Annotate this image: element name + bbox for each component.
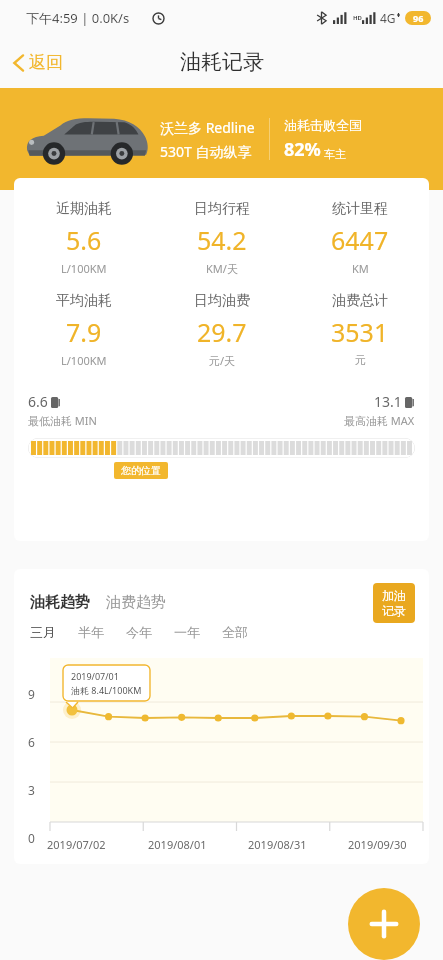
staticText: 加油 <box>382 588 406 603</box>
staticText: 6.6 <box>28 392 48 411</box>
button[interactable]: 半年 <box>78 624 126 640</box>
staticText: L/100KM <box>61 353 107 368</box>
staticText: 油耗 8.4L/100KM <box>71 684 142 696</box>
staticText: 返回 <box>29 52 63 73</box>
staticText: 7.9 <box>66 315 102 349</box>
staticText: 三月 <box>30 624 56 640</box>
staticText: 2019/07/01 <box>71 670 119 682</box>
staticText: 0 <box>28 830 35 846</box>
staticText: 3 <box>28 782 35 798</box>
staticText: 82% <box>284 137 321 162</box>
staticText: KM <box>352 261 369 276</box>
staticText: 29.7 <box>197 315 247 349</box>
staticText: 13.1 <box>374 392 402 411</box>
button[interactable]: 近期油耗 <box>14 200 153 276</box>
button[interactable]: 加油 <box>373 583 415 623</box>
staticText: 2019/08/01 <box>148 837 207 852</box>
staticText: 您的位置 <box>121 464 161 477</box>
staticText: 油费趋势 <box>106 593 166 612</box>
staticText: 元 <box>355 353 366 367</box>
button[interactable]: 日均行程 <box>153 200 291 276</box>
staticText: 最高油耗 MAX <box>344 413 415 428</box>
staticText: 54.2 <box>197 223 247 257</box>
staticText: 近期油耗 <box>56 200 112 218</box>
staticText: 6 <box>28 734 35 750</box>
staticText: 日均油费 <box>194 292 250 310</box>
staticText: 5.6 <box>66 223 102 257</box>
staticText: L/100KM <box>61 261 107 276</box>
button[interactable]: 油费总计 <box>291 292 429 367</box>
staticText: 油耗趋势 <box>30 593 90 612</box>
staticText: 元/天 <box>209 353 236 368</box>
staticText: 今年 <box>126 624 152 640</box>
button[interactable]: 返回 <box>0 46 75 79</box>
button[interactable] <box>28 438 415 458</box>
button[interactable]: 今年 <box>126 624 174 640</box>
button[interactable]: 日均油费 <box>153 292 291 368</box>
button[interactable]: 全部 <box>222 624 270 640</box>
button[interactable]: 油耗趋势 <box>30 593 90 612</box>
staticText: 96 <box>413 12 424 24</box>
staticText: 2019/07/02 <box>47 837 106 852</box>
staticText: KM/天 <box>206 261 238 276</box>
staticText: 统计里程 <box>332 200 388 218</box>
staticText: 2019/08/31 <box>248 837 307 852</box>
staticText: 530T 自动纵享 <box>160 142 252 161</box>
staticText: 一年 <box>174 624 200 640</box>
staticText: 9 <box>28 686 35 702</box>
button[interactable]: 添加加油记录 <box>348 888 420 960</box>
staticText: 半年 <box>78 624 104 640</box>
button[interactable]: 一年 <box>174 624 222 640</box>
button[interactable]: 三月 <box>30 624 78 640</box>
staticText: 6447 <box>331 223 389 257</box>
button[interactable]: 油费趋势 <box>106 593 166 612</box>
staticText: 沃兰多 Redline <box>160 118 255 137</box>
staticText: 车主 <box>324 147 346 161</box>
staticText: 平均油耗 <box>56 292 112 310</box>
staticText: 最低油耗 MIN <box>28 413 97 428</box>
staticText: 油耗记录 <box>180 49 264 75</box>
staticText: HD <box>353 14 362 22</box>
staticText: 记录 <box>382 603 406 618</box>
staticText: 4G <box>380 10 396 26</box>
staticText: 全部 <box>222 624 248 640</box>
button[interactable]: 平均油耗 <box>14 292 153 368</box>
button[interactable]: 统计里程 <box>291 200 429 276</box>
staticText: 2019/09/30 <box>348 837 407 852</box>
staticText: 3531 <box>331 315 389 349</box>
staticText: 油耗击败全国 <box>284 117 362 133</box>
staticText: 日均行程 <box>194 200 250 218</box>
staticText: 下午4:59 | 0.0K/s <box>26 9 130 27</box>
staticText: 油费总计 <box>332 292 388 310</box>
